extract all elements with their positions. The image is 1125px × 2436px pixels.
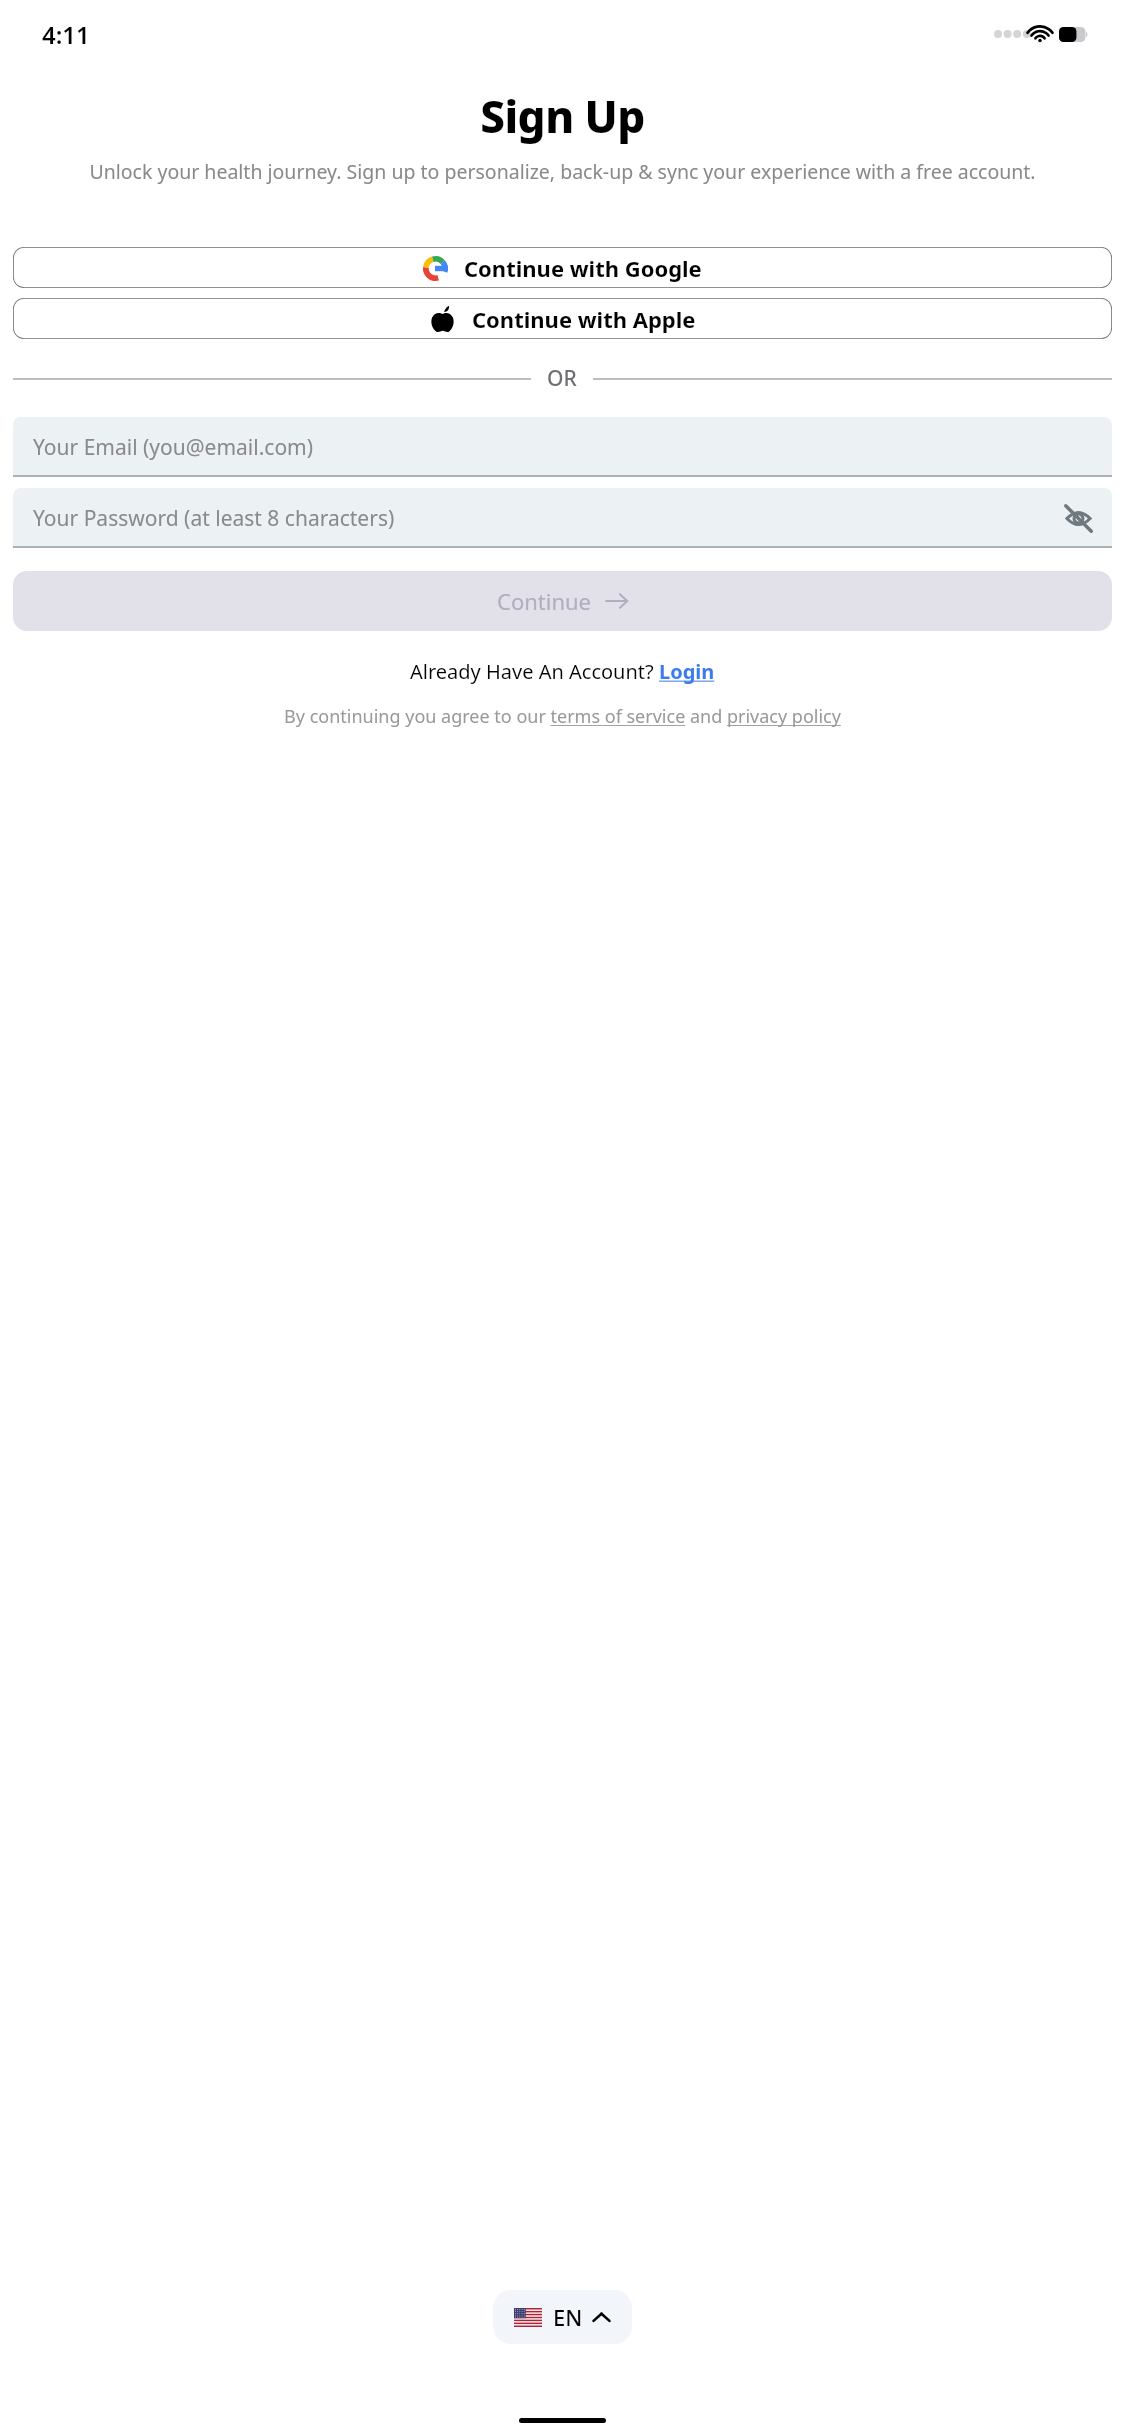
staticText: Unlock your health journey. Sign up to p… <box>7 158 1118 185</box>
staticText: Continue <box>497 586 592 616</box>
button[interactable]: By continuing you agree to our terms of … <box>22 704 1103 729</box>
staticText: Already Have An Account? <box>410 658 659 685</box>
button[interactable]: Your Email (you@email.com) <box>13 417 1112 477</box>
staticText: OR <box>547 364 577 393</box>
button[interactable]: EN <box>493 2290 632 2344</box>
button[interactable]: Continue <box>13 571 1112 631</box>
staticText: Continue with Google <box>464 253 702 283</box>
button[interactable]: Continue with Google <box>13 247 1112 288</box>
staticText: 4:11 <box>42 18 90 51</box>
staticText: Continue with Apple <box>472 304 696 334</box>
staticText: Your Email (you@email.com) <box>33 433 314 462</box>
staticText: EN <box>553 2302 583 2332</box>
button[interactable]: Continue with Apple <box>13 298 1112 339</box>
staticText: Sign Up <box>0 86 1125 146</box>
button[interactable]: Your Password (at least 8 characters) <box>13 488 1112 548</box>
button[interactable]: Already Have An Account? <box>0 658 1125 685</box>
staticText: Login <box>659 658 715 685</box>
staticText: Your Password (at least 8 characters) <box>33 504 395 533</box>
button[interactable]: Show password <box>1058 498 1098 538</box>
